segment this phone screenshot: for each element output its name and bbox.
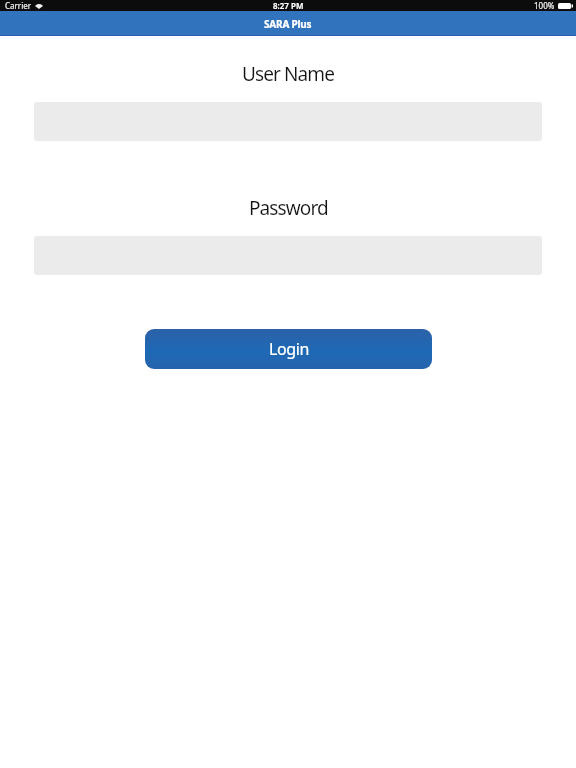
staticText: 8:27 PM: [273, 0, 304, 11]
button[interactable]: Login: [145, 329, 432, 369]
staticText: Login: [269, 338, 309, 360]
staticText: 100%: [534, 0, 555, 11]
staticText: Password: [249, 195, 328, 218]
staticText: Carrier: [5, 0, 32, 11]
staticText: User Name: [242, 61, 334, 84]
staticText: SARA Plus: [264, 17, 312, 31]
